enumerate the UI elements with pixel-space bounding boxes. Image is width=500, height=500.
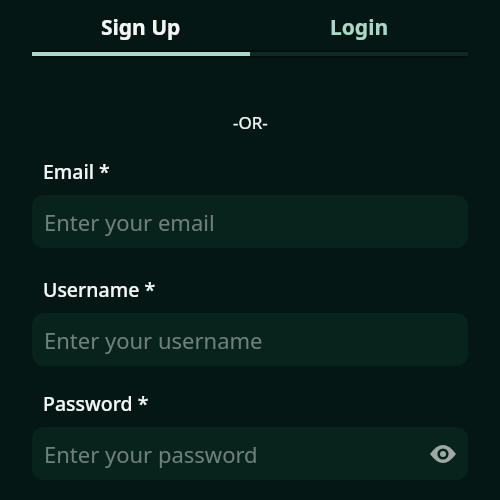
button[interactable]: [430, 445, 456, 463]
button[interactable]: Login: [250, 4, 468, 50]
button[interactable]: Enter your email: [32, 195, 468, 248]
staticText: Password *: [43, 390, 149, 417]
staticText: Email *: [43, 158, 110, 185]
staticText: Enter your username: [44, 325, 456, 355]
button[interactable]: Sign Up: [32, 4, 250, 50]
button[interactable]: Enter your password: [32, 427, 468, 480]
staticText: -OR-: [233, 111, 268, 134]
staticText: Enter your password: [44, 439, 430, 469]
staticText: Username *: [43, 276, 156, 303]
staticText: Sign Up: [101, 13, 181, 42]
button[interactable]: Enter your username: [32, 313, 468, 366]
staticText: Enter your email: [44, 207, 456, 237]
staticText: Login: [330, 13, 389, 42]
